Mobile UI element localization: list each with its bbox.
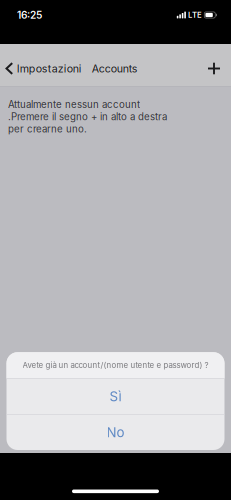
staticText: Sì: [109, 388, 121, 404]
staticText: No: [106, 424, 124, 440]
button[interactable]: Sì: [6, 379, 224, 414]
staticText: Accounts: [92, 62, 138, 75]
staticText: 16:25: [17, 9, 42, 21]
staticText: Avete già un account/(nome utente e pass…: [22, 360, 208, 370]
staticText: Impostazioni: [17, 62, 82, 75]
button[interactable]: Add account: [198, 57, 231, 80]
button[interactable]: No: [6, 415, 224, 450]
staticText: Attualmente nessun account: [8, 99, 140, 110]
staticText: LTE: [188, 10, 202, 20]
staticText: .Premere il segno + in alto a destra: [8, 111, 167, 123]
staticText: per crearne uno.: [8, 123, 87, 135]
button[interactable]: Accounts: [82, 56, 138, 81]
button[interactable]: Impostazioni: [0, 56, 82, 81]
